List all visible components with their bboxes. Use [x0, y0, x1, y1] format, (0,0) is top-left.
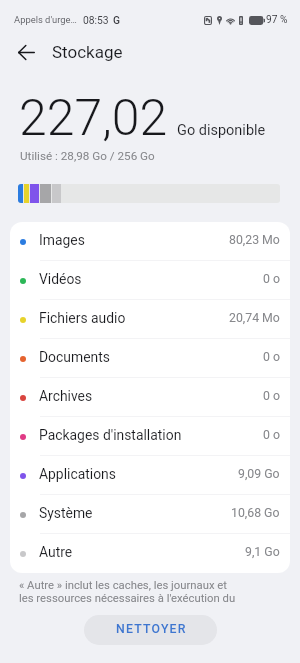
staticText: Vidéos — [39, 271, 82, 287]
staticText: 9,1 Go — [245, 545, 280, 559]
button[interactable]: Retour — [0, 39, 52, 66]
staticText: 97 % — [266, 14, 288, 26]
staticText: 9,09 Go — [238, 467, 280, 481]
staticText: Appels d'urge… — [14, 14, 77, 25]
staticText: Applications — [39, 466, 116, 482]
staticText: Packages d'installation — [39, 427, 182, 443]
staticText: 20,74 Mo — [229, 311, 280, 325]
staticText: Utilisé : 28,98 Go / 256 Go — [20, 149, 155, 163]
staticText: 80,23 Mo — [229, 233, 280, 247]
staticText: Fichiers audio — [39, 310, 126, 326]
staticText: Go disponible — [177, 122, 266, 139]
button[interactable]: NETTOYER — [84, 615, 217, 645]
button[interactable]: Images — [10, 222, 290, 261]
staticText: Documents — [39, 349, 110, 365]
staticText: Archives — [39, 388, 93, 404]
staticText: 0 o — [263, 389, 280, 403]
staticText: 0 o — [263, 350, 280, 364]
button[interactable]: Fichiers audio — [10, 300, 290, 339]
staticText: 10,68 Go — [231, 506, 280, 520]
staticText: 0 o — [263, 272, 280, 286]
staticText: Stockage — [52, 42, 123, 62]
button[interactable]: Documents — [10, 339, 290, 378]
staticText: « Autre » inclut les caches, les journau… — [19, 579, 242, 604]
staticText: Images — [39, 232, 85, 248]
button[interactable]: Archives — [10, 378, 290, 417]
button[interactable]: Packages d'installation — [10, 417, 290, 456]
button[interactable]: Vidéos — [10, 261, 290, 300]
staticText: G — [113, 14, 121, 26]
staticText: 227,02 — [19, 89, 168, 148]
staticText: Système — [39, 505, 93, 521]
button[interactable]: Système — [10, 495, 290, 534]
staticText: 0 o — [263, 428, 280, 442]
button[interactable]: Applications — [10, 456, 290, 495]
staticText: Autre — [39, 544, 73, 560]
staticText: 08:53 — [83, 14, 109, 26]
staticText: NETTOYER — [116, 622, 187, 636]
button[interactable]: Autre — [10, 534, 290, 573]
